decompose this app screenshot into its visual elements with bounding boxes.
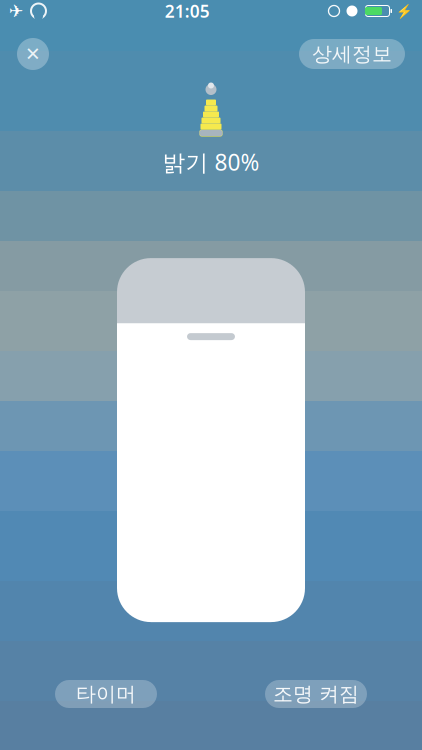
staticText: 조명 켜짐 xyxy=(273,682,359,706)
staticText: 상세정보 xyxy=(312,42,392,66)
staticText: ✈ xyxy=(9,1,24,21)
button[interactable]: 조명 켜짐 xyxy=(265,680,367,708)
button[interactable]: Close xyxy=(17,38,49,70)
staticText: 타이머 xyxy=(76,682,136,706)
staticText: ✕ xyxy=(25,43,41,65)
staticText: 21:05 xyxy=(165,0,210,22)
button[interactable]: 상세정보 xyxy=(299,39,405,69)
staticText: 밝기 80% xyxy=(162,147,259,177)
staticText: ⚡ xyxy=(396,3,413,19)
button[interactable]: 타이머 xyxy=(55,680,157,708)
